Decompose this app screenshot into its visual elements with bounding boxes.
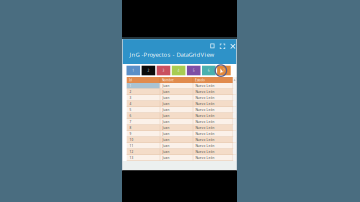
staticText: Juan bbox=[162, 96, 169, 100]
staticText: Juan bbox=[162, 138, 169, 142]
staticText: 12 bbox=[129, 150, 133, 154]
staticText: Nuevo León bbox=[195, 114, 214, 118]
staticText: Nuevo León bbox=[195, 132, 214, 136]
staticText: 5 bbox=[129, 108, 131, 112]
staticText: Juan bbox=[162, 156, 169, 160]
button[interactable]: 7 bbox=[217, 66, 231, 75]
button[interactable]: Restore window bbox=[208, 41, 216, 51]
staticText: 6 bbox=[129, 114, 131, 118]
staticText: Nuevo León bbox=[195, 90, 214, 94]
staticText: Juan bbox=[162, 126, 169, 130]
staticText: Juan bbox=[162, 114, 169, 118]
staticText: 2 bbox=[147, 68, 149, 73]
button[interactable]: 1 bbox=[126, 66, 140, 75]
staticText: 5 bbox=[193, 68, 195, 73]
staticText: Juan bbox=[162, 108, 169, 112]
staticText: 8 bbox=[129, 126, 131, 130]
button[interactable]: 6 bbox=[202, 66, 216, 75]
staticText: 13 bbox=[129, 156, 133, 160]
staticText: Juan bbox=[162, 84, 169, 88]
staticText: 7 bbox=[129, 120, 131, 124]
button[interactable]: 3 bbox=[157, 66, 170, 75]
staticText: 3 bbox=[162, 68, 164, 73]
staticText: 10 bbox=[129, 138, 133, 142]
button[interactable]: 2 bbox=[142, 66, 155, 75]
staticText: Nuevo León bbox=[195, 144, 214, 148]
staticText: Nuevo León bbox=[195, 150, 214, 154]
staticText: Nuevo León bbox=[195, 102, 214, 106]
staticText: 11 bbox=[129, 144, 133, 148]
staticText: JnG -Proyectos - DataGridView bbox=[130, 50, 215, 58]
staticText: Nombre bbox=[162, 78, 174, 82]
staticText: 4 bbox=[129, 102, 131, 106]
staticText: Nuevo León bbox=[195, 108, 214, 112]
staticText: 1 bbox=[132, 68, 134, 73]
button[interactable]: 4 bbox=[172, 66, 185, 75]
staticText: 9 bbox=[129, 132, 131, 136]
staticText: Juan bbox=[162, 150, 169, 154]
staticText: 2 bbox=[129, 90, 131, 94]
staticText: Nuevo León bbox=[195, 96, 214, 100]
staticText: 1 bbox=[129, 84, 131, 88]
staticText: 7 bbox=[223, 68, 225, 73]
button[interactable]: 5 bbox=[187, 66, 200, 75]
staticText: Nuevo León bbox=[195, 120, 214, 124]
staticText: Nuevo León bbox=[195, 138, 214, 142]
button[interactable]: Close window bbox=[228, 41, 238, 51]
staticText: Estado bbox=[195, 78, 205, 82]
staticText: 3 bbox=[129, 96, 131, 100]
staticText: Nuevo León bbox=[195, 156, 214, 160]
staticText: Juan bbox=[162, 90, 169, 94]
staticText: 6 bbox=[208, 68, 210, 73]
staticText: Juan bbox=[162, 144, 169, 148]
staticText: 4 bbox=[178, 68, 180, 73]
staticText: Nuevo León bbox=[195, 126, 214, 130]
staticText: Juan bbox=[162, 102, 169, 106]
staticText: Nuevo León bbox=[195, 84, 214, 88]
staticText: Juan bbox=[162, 132, 169, 136]
button[interactable]: Maximize window bbox=[217, 41, 227, 51]
staticText: Id bbox=[129, 78, 132, 82]
staticText: Juan bbox=[162, 120, 169, 124]
